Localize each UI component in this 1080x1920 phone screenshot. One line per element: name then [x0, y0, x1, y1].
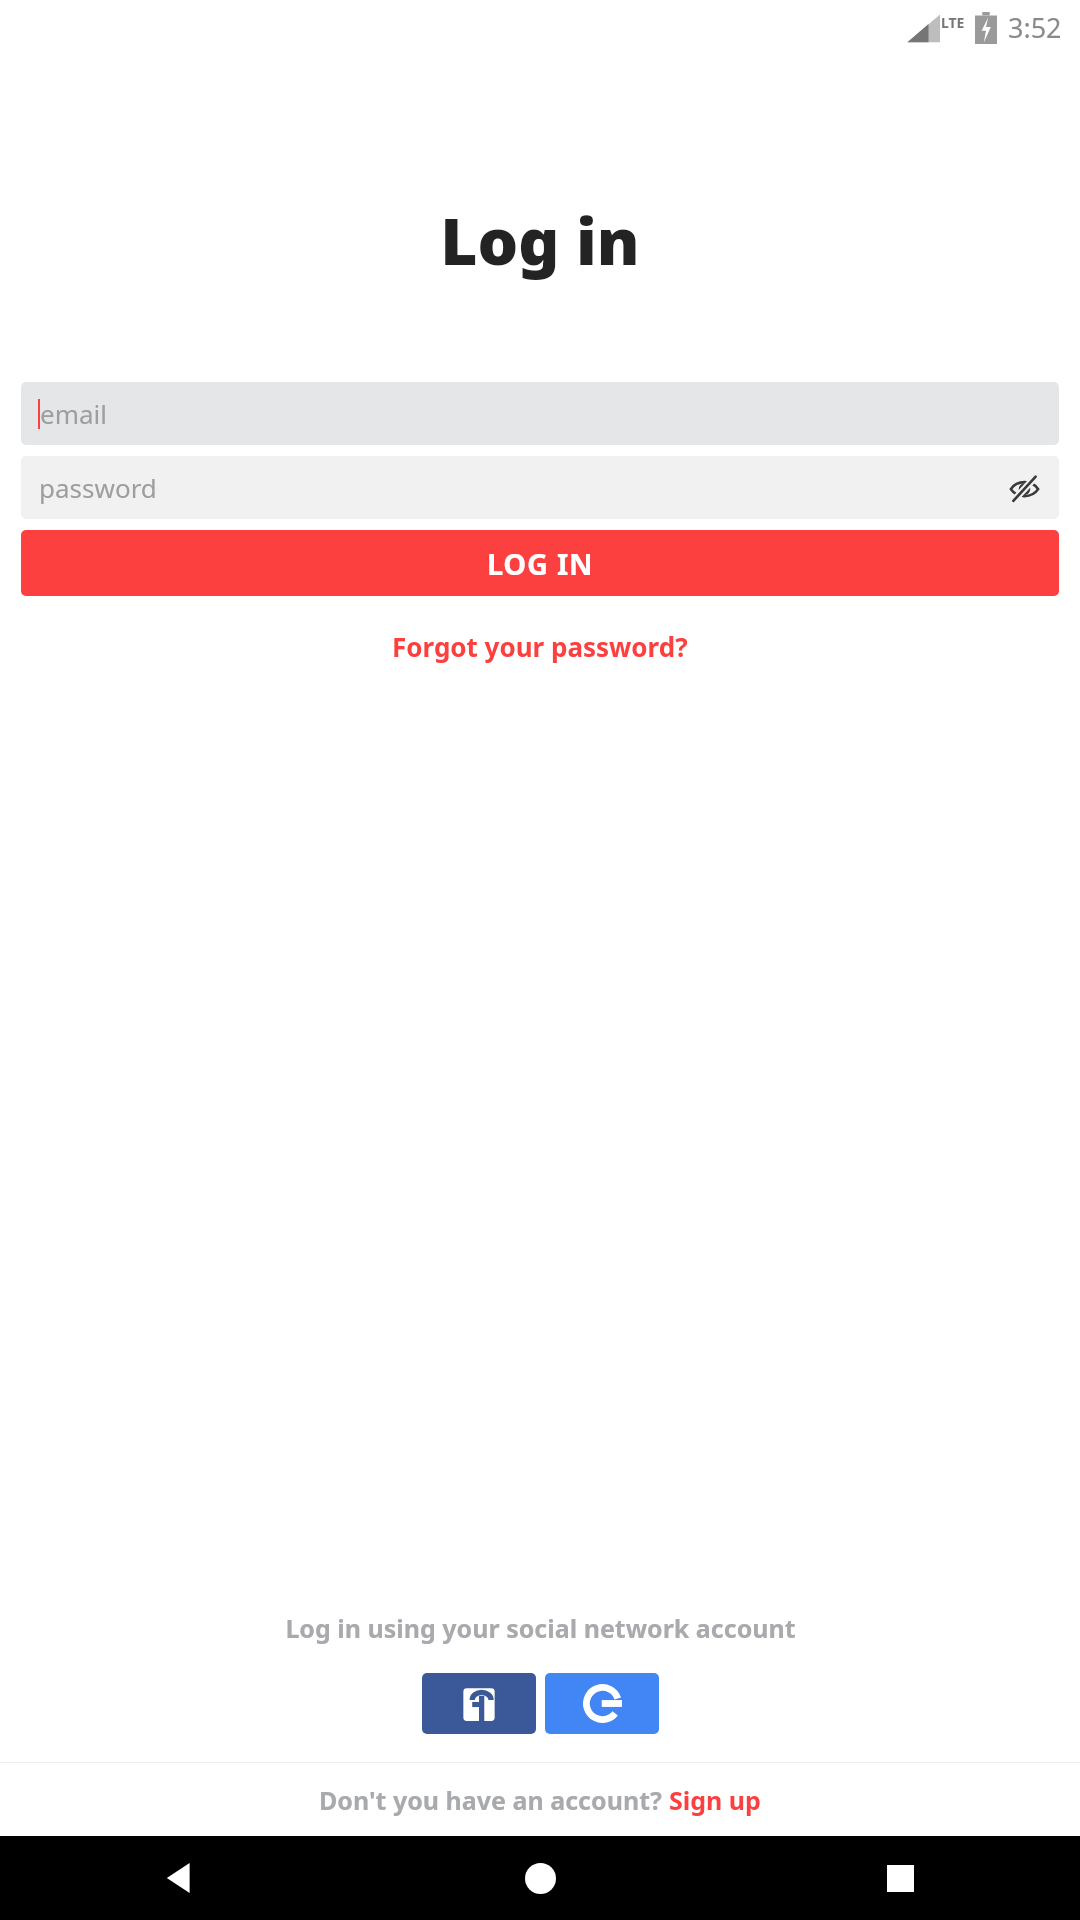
button[interactable]: Forgot your password? — [392, 629, 688, 664]
button[interactable]: Show password — [1000, 464, 1048, 512]
button[interactable]: Home — [360, 1836, 720, 1920]
button[interactable]: email — [21, 382, 1059, 445]
staticText: Forgot your password? — [392, 629, 688, 664]
button[interactable]: Back — [0, 1836, 360, 1920]
staticText: Log in — [440, 197, 640, 284]
button[interactable]: Recent apps — [720, 1836, 1080, 1920]
staticText: Sign up — [669, 1783, 761, 1817]
staticText: Log in using your social network account — [285, 1611, 796, 1645]
button[interactable]: Sign up — [669, 1783, 761, 1817]
staticText: LOG IN — [487, 544, 594, 583]
button[interactable]: LOG IN — [21, 530, 1059, 596]
staticText: 3:52 — [1008, 9, 1062, 46]
staticText: password — [39, 470, 157, 505]
staticText: Don't you have an account? — [319, 1783, 669, 1817]
staticText: LTE — [941, 13, 965, 32]
button[interactable]: Log in with Facebook — [422, 1673, 536, 1734]
button[interactable]: Log in with Google — [545, 1673, 659, 1734]
button[interactable]: password — [21, 456, 1059, 519]
staticText: email — [40, 396, 107, 431]
